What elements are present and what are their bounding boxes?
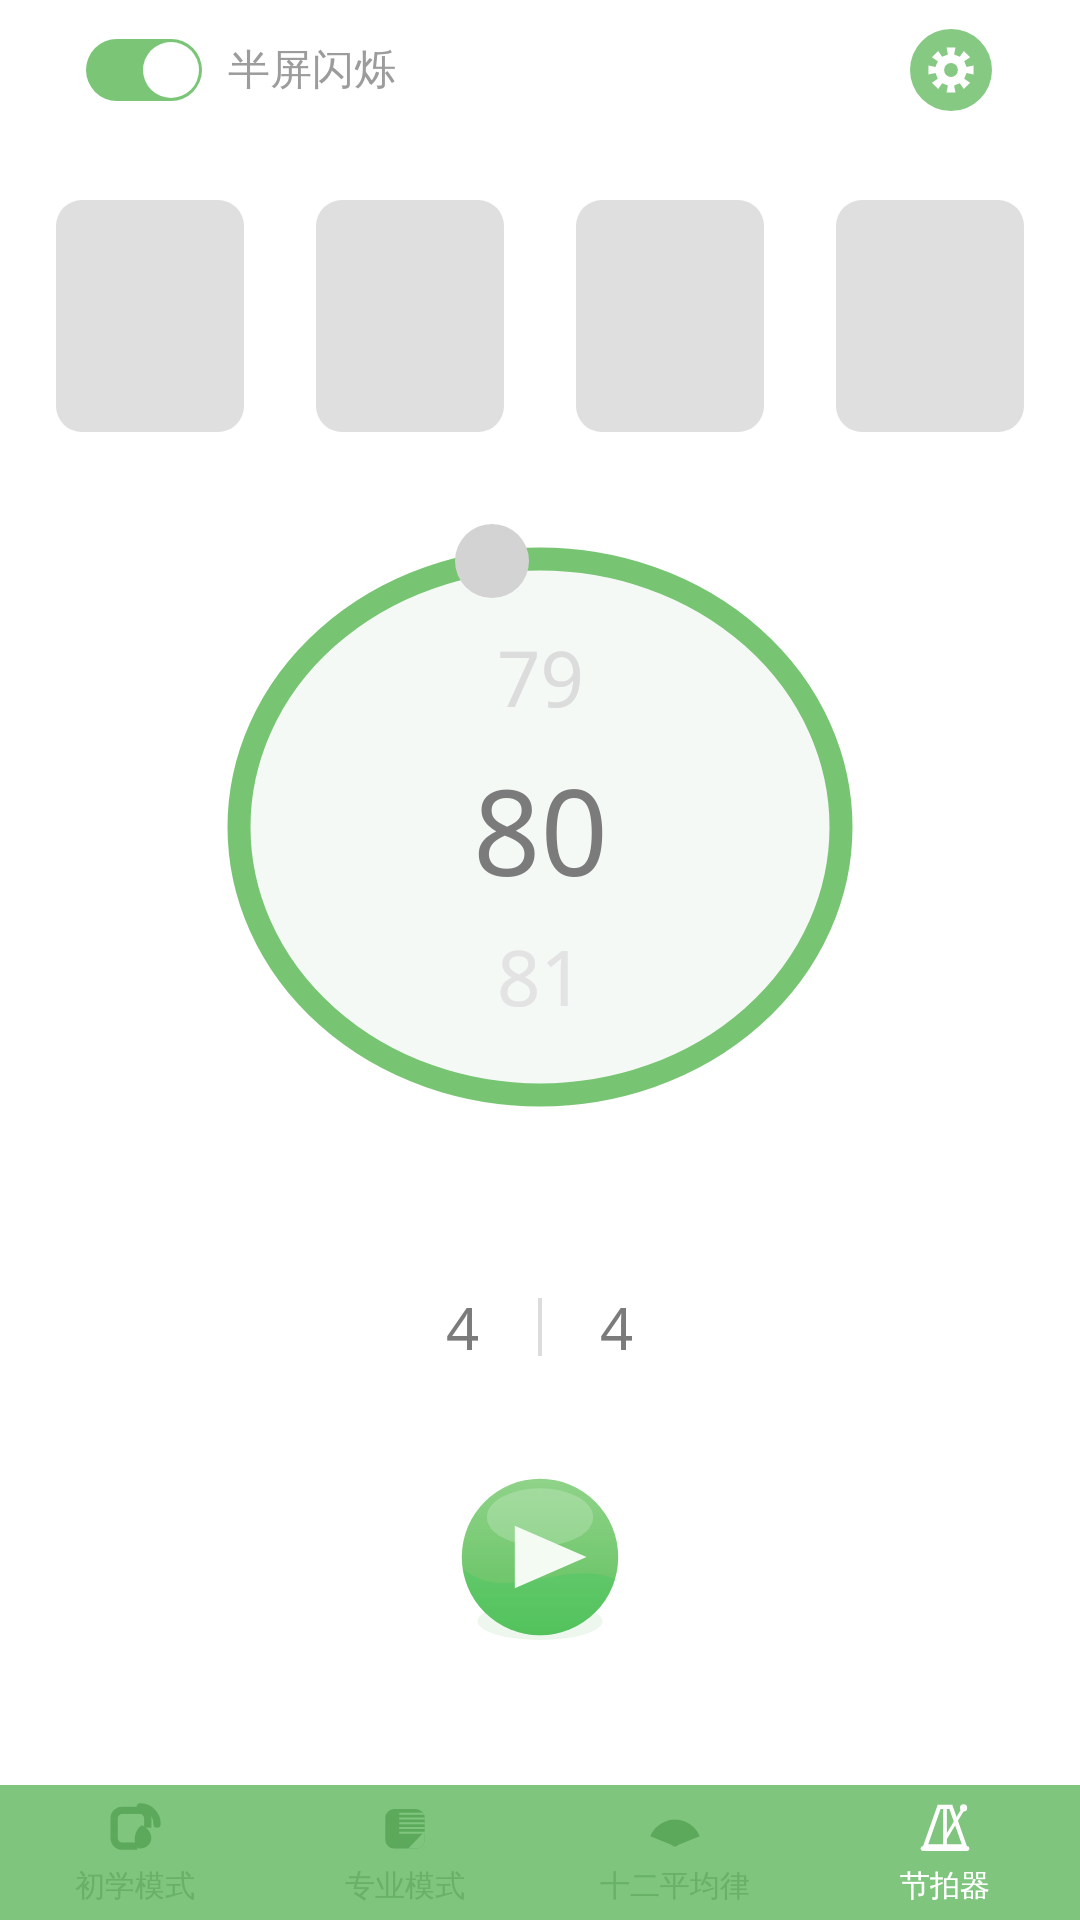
staticText: 十二平均律 <box>600 1867 750 1905</box>
button[interactable]: 专业模式 <box>270 1785 540 1920</box>
button[interactable]: 半屏闪烁 <box>86 39 396 101</box>
button[interactable]: 十二平均律 <box>540 1785 810 1920</box>
button[interactable] <box>836 200 1024 432</box>
staticText: 80 <box>473 750 608 911</box>
button[interactable]: 初学模式 <box>0 1785 270 1920</box>
button[interactable]: 4 <box>388 1272 538 1382</box>
staticText: 节拍器 <box>900 1867 990 1905</box>
button[interactable]: 79 <box>227 547 853 1107</box>
staticText: 初学模式 <box>75 1867 195 1905</box>
staticText: 79 <box>497 626 584 730</box>
staticText: 4 <box>446 1288 480 1367</box>
button[interactable]: 节拍器 <box>810 1785 1080 1920</box>
staticText: 81 <box>497 925 584 1029</box>
button[interactable] <box>316 200 504 432</box>
staticText: 专业模式 <box>345 1867 465 1905</box>
button[interactable] <box>56 200 244 432</box>
button[interactable] <box>576 200 764 432</box>
staticText: 4 <box>600 1288 634 1367</box>
staticText: 半屏闪烁 <box>228 44 396 97</box>
button[interactable]: Settings <box>910 29 992 111</box>
button[interactable]: Play <box>455 1472 625 1642</box>
button[interactable]: 4 <box>542 1272 692 1382</box>
